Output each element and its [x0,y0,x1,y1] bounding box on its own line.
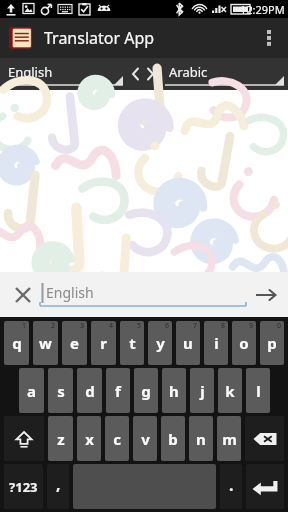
button[interactable]: Clear text [8,280,38,310]
staticText: English [8,63,53,81]
staticText: s [57,381,65,401]
staticText: 4 [109,321,114,331]
button[interactable]: d [77,368,102,413]
button[interactable]: q [4,321,29,365]
staticText: n [196,429,206,449]
staticText: 0 [277,321,282,331]
button[interactable]: Translate [246,275,286,315]
button[interactable]: n [189,416,213,461]
button[interactable]: t [120,321,144,365]
staticText: t [129,333,136,353]
staticText: ?123 [9,478,38,496]
button[interactable]: e [62,321,87,365]
staticText: b [168,429,178,449]
staticText: w [39,333,52,353]
button[interactable]: c [105,416,129,461]
staticText: Arabic [169,63,208,81]
staticText: h [169,381,179,401]
staticText: p [267,333,277,353]
staticText: 2 [51,321,56,331]
staticText: 12:29PM [240,2,285,17]
staticText: f [115,381,121,401]
staticText: 5 [137,321,142,331]
button[interactable]: o [232,321,256,365]
staticText: e [70,333,79,353]
button[interactable]: k [218,368,242,413]
staticText: i [214,333,219,353]
button[interactable]: m [217,416,241,461]
staticText: x [85,429,94,449]
button[interactable]: s [48,368,73,413]
staticText: v [141,429,150,449]
button[interactable]: Comma [47,464,69,509]
staticText: j [200,381,205,401]
button[interactable]: Enter [246,464,284,509]
staticText: m [222,429,237,449]
button[interactable]: r [91,321,116,365]
staticText: q [12,333,22,353]
button[interactable]: y [148,321,172,365]
button[interactable]: p [260,321,284,365]
staticText: d [85,381,95,401]
button[interactable]: Period [220,464,242,509]
staticText: 3 [80,321,85,331]
button[interactable]: More options [254,18,284,58]
button[interactable]: x [77,416,101,461]
button[interactable]: Arabic [165,60,284,88]
staticText: z [57,429,65,449]
button[interactable]: u [176,321,200,365]
button[interactable]: z [48,416,73,461]
staticText: y [156,333,165,353]
staticText: o [239,333,249,353]
staticText: 6 [165,321,170,331]
button[interactable]: Backspace [245,416,284,461]
staticText: r [100,333,107,353]
button[interactable]: h [162,368,186,413]
staticText: c [113,429,121,449]
staticText: 1 [22,321,27,331]
staticText: g [141,381,151,401]
staticText: 7 [193,321,198,331]
button[interactable]: l [246,368,270,413]
staticText: 9 [249,321,254,331]
button[interactable]: English [40,280,246,310]
staticText: English [46,283,94,302]
button[interactable]: Shift [4,416,44,461]
staticText: u [183,333,193,353]
button[interactable]: ?123 [4,464,43,509]
staticText: . [229,474,234,496]
staticText: l [256,381,261,401]
button[interactable]: g [134,368,158,413]
button[interactable]: b [161,416,185,461]
button[interactable]: Swap languages [123,58,165,90]
staticText: , [56,473,61,495]
staticText: k [225,381,235,401]
button[interactable]: w [33,321,58,365]
button[interactable]: f [106,368,130,413]
button[interactable]: i [204,321,228,365]
staticText: Translator App [44,27,155,49]
button[interactable] [8,25,34,51]
staticText: a [27,381,36,401]
staticText: 8 [221,321,226,331]
button[interactable]: a [19,368,44,413]
button[interactable]: j [190,368,214,413]
button[interactable]: v [133,416,157,461]
button[interactable]: English [4,60,123,88]
